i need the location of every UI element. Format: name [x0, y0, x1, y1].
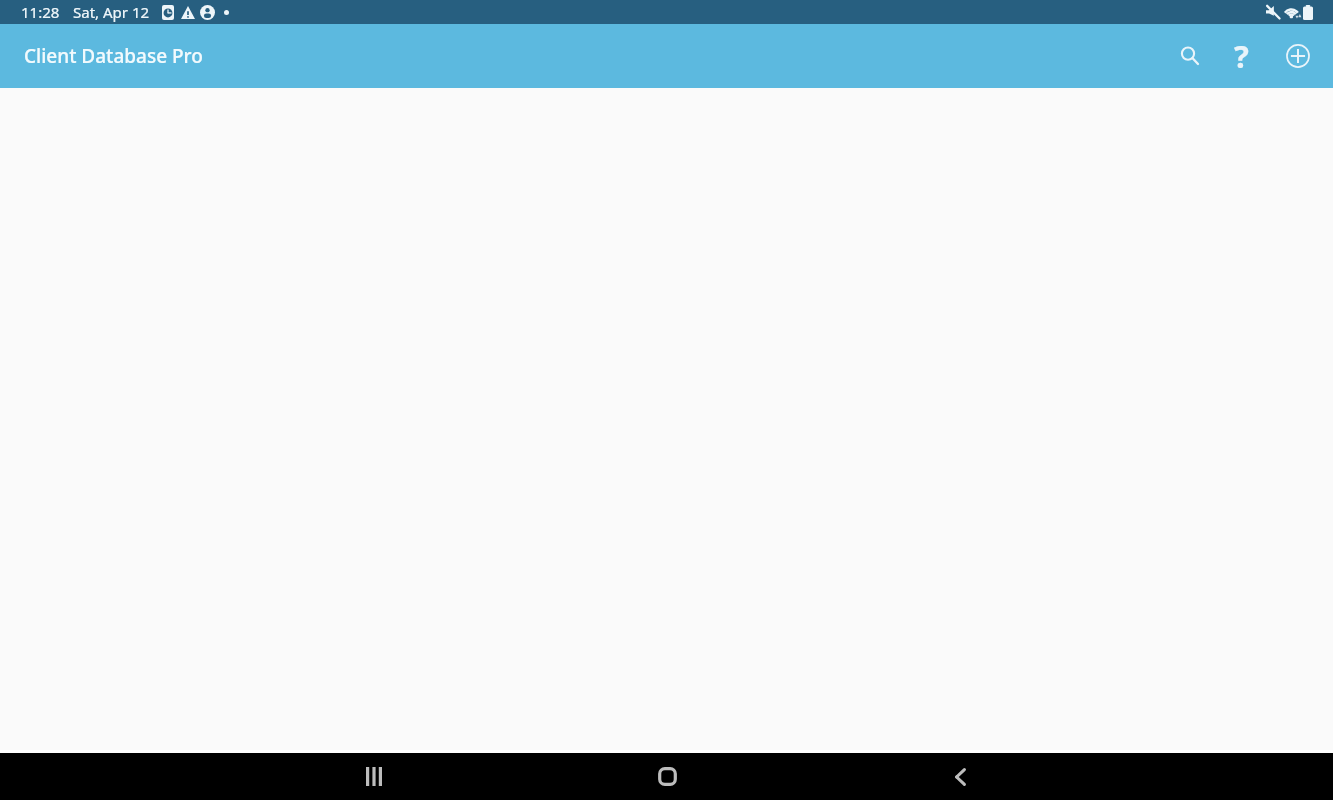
button[interactable]: Home	[620, 753, 714, 800]
staticText: Sat, Apr 12	[73, 2, 150, 22]
button[interactable]: Search	[1173, 28, 1207, 84]
staticText: ?	[1234, 35, 1249, 77]
staticText: 11:28	[21, 2, 60, 22]
button[interactable]: Back	[913, 753, 1007, 800]
button[interactable]: Add	[1275, 28, 1321, 84]
button[interactable]: Recent apps	[327, 753, 421, 800]
button[interactable]: Help	[1207, 28, 1275, 84]
staticText: Client Database Pro	[24, 43, 203, 69]
